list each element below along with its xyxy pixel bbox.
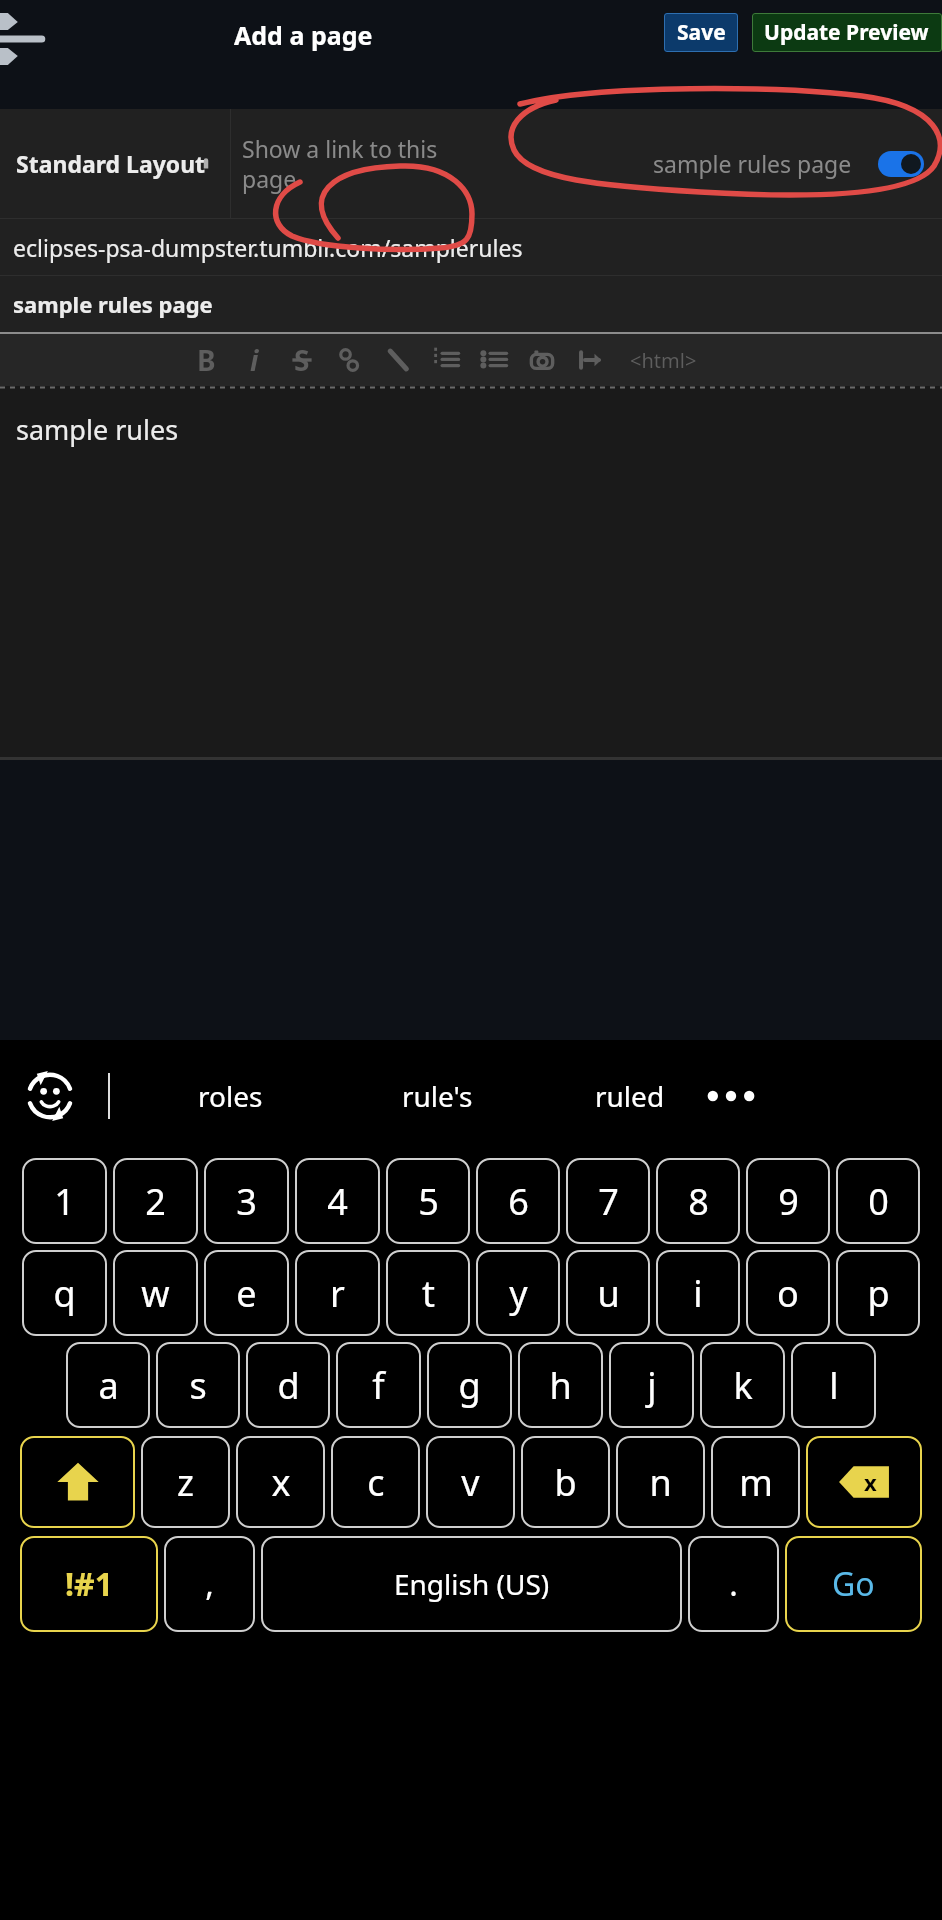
button[interactable]: c — [331, 1436, 420, 1528]
button[interactable]: 1 — [22, 1158, 107, 1244]
staticText: x — [271, 1458, 291, 1507]
button[interactable]: 0 — [836, 1158, 920, 1244]
button[interactable]: Standard Layout — [0, 109, 230, 218]
staticText: j — [647, 1361, 657, 1410]
button[interactable]: 8 — [656, 1158, 740, 1244]
button[interactable]: i — [230, 334, 278, 386]
staticText: Go — [832, 1562, 875, 1606]
button[interactable]: Emoji — [22, 1068, 78, 1124]
button[interactable]: Indent — [566, 334, 614, 386]
button[interactable]: p — [836, 1250, 920, 1336]
button[interactable]: rule's — [344, 1040, 530, 1152]
staticText: eclipses-psa-dumpster.tumblr.com/sampler… — [13, 232, 523, 263]
staticText: ruled — [595, 1077, 665, 1115]
staticText: x — [864, 1467, 877, 1497]
button[interactable]: Update Preview — [752, 13, 942, 52]
button[interactable]: y — [476, 1250, 560, 1336]
button[interactable]: ruled — [540, 1040, 720, 1152]
staticText: b — [554, 1458, 577, 1507]
button[interactable]: 5 — [386, 1158, 470, 1244]
staticText: Standard Layout — [16, 148, 206, 179]
button[interactable]: b — [521, 1436, 610, 1528]
staticText: Update Preview — [764, 18, 929, 47]
button[interactable]: h — [518, 1342, 603, 1428]
button[interactable]: Add photo — [518, 334, 566, 386]
button[interactable]: l — [791, 1342, 876, 1428]
staticText: English (US) — [394, 1565, 550, 1603]
button[interactable]: Numbered list — [422, 334, 470, 386]
button[interactable]: m — [711, 1436, 800, 1528]
button[interactable]: 3 — [204, 1158, 289, 1244]
staticText: t — [422, 1269, 435, 1318]
button[interactable]: 7 — [566, 1158, 650, 1244]
button[interactable]: B — [182, 334, 230, 386]
button[interactable]: g — [427, 1342, 512, 1428]
button[interactable]: i — [656, 1250, 740, 1336]
staticText: B — [197, 341, 216, 379]
staticText: o — [777, 1269, 799, 1318]
staticText: 9 — [778, 1177, 799, 1226]
button[interactable]: q — [22, 1250, 107, 1336]
staticText: q — [53, 1269, 76, 1318]
staticText: 8 — [688, 1177, 709, 1226]
button[interactable]: w — [113, 1250, 198, 1336]
button[interactable]: s — [156, 1342, 240, 1428]
button[interactable]: sample rules page — [653, 148, 924, 179]
button[interactable]: <html> — [630, 347, 697, 374]
staticText: roles — [198, 1077, 263, 1115]
staticText: 7 — [598, 1177, 619, 1226]
button[interactable]: English (US) — [261, 1536, 682, 1632]
button[interactable]: x — [236, 1436, 325, 1528]
button[interactable]: 4 — [295, 1158, 380, 1244]
button[interactable]: , — [164, 1536, 255, 1632]
button[interactable]: Shift — [20, 1436, 135, 1528]
button[interactable]: !#1 — [20, 1536, 158, 1632]
staticText: 0 — [868, 1177, 889, 1226]
staticText: i — [693, 1269, 703, 1318]
button[interactable]: n — [616, 1436, 705, 1528]
button[interactable]: Link — [326, 334, 374, 386]
button[interactable]: e — [204, 1250, 289, 1336]
button[interactable]: 9 — [746, 1158, 830, 1244]
staticText: rule's — [402, 1077, 473, 1115]
staticText: z — [177, 1458, 194, 1507]
button[interactable]: Strikethrough — [278, 334, 326, 386]
staticText: f — [372, 1361, 385, 1410]
button[interactable]: Menu — [0, 14, 46, 64]
staticText: 4 — [327, 1177, 348, 1226]
staticText: h — [549, 1361, 572, 1410]
button[interactable]: Backspace — [806, 1436, 922, 1528]
button[interactable]: t — [386, 1250, 470, 1336]
staticText: u — [597, 1269, 620, 1318]
button[interactable]: z — [141, 1436, 230, 1528]
staticText: <html> — [630, 347, 697, 374]
staticText: p — [867, 1269, 890, 1318]
button[interactable]: u — [566, 1250, 650, 1336]
button[interactable]: Go — [785, 1536, 922, 1632]
button[interactable]: d — [246, 1342, 330, 1428]
button[interactable]: 6 — [476, 1158, 560, 1244]
staticText: d — [277, 1361, 300, 1410]
button[interactable]: r — [295, 1250, 380, 1336]
button[interactable]: Save — [664, 13, 738, 52]
button[interactable]: More suggestions — [696, 1061, 766, 1131]
staticText: r — [330, 1269, 345, 1318]
button[interactable]: v — [426, 1436, 515, 1528]
staticText: 2 — [145, 1177, 166, 1226]
button[interactable]: 2 — [113, 1158, 198, 1244]
staticText: v — [461, 1458, 480, 1507]
button[interactable]: j — [609, 1342, 694, 1428]
button[interactable]: roles — [130, 1040, 330, 1152]
button[interactable]: a — [66, 1342, 150, 1428]
button[interactable]: k — [700, 1342, 785, 1428]
staticText: . — [729, 1562, 738, 1606]
button[interactable]: Attach — [374, 334, 422, 386]
staticText: Save — [677, 18, 726, 47]
button[interactable]: f — [336, 1342, 421, 1428]
button[interactable]: o — [746, 1250, 830, 1336]
staticText: 3 — [236, 1177, 257, 1226]
button[interactable]: Bulleted list — [470, 334, 518, 386]
button[interactable]: . — [688, 1536, 779, 1632]
staticText: 6 — [508, 1177, 529, 1226]
staticText: 5 — [418, 1177, 439, 1226]
